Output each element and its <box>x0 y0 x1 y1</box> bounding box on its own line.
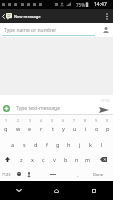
button[interactable]: Add attachment <box>0 95 13 114</box>
staticText: Type name or number <box>4 27 57 34</box>
button[interactable]: j <box>74 137 85 152</box>
button[interactable]: m <box>82 152 93 167</box>
staticText: e <box>28 125 32 132</box>
button[interactable]: Send <box>98 95 113 114</box>
staticText: x <box>31 156 34 163</box>
button[interactable]: 9 <box>91 115 102 137</box>
button[interactable]: ?123 <box>0 167 13 181</box>
button[interactable]: 4 <box>36 115 47 137</box>
button[interactable]: Done <box>84 167 113 181</box>
staticText: g <box>56 141 60 148</box>
button[interactable]: c <box>38 152 49 167</box>
button[interactable]: 3 <box>24 115 36 137</box>
button[interactable]: x <box>27 152 38 167</box>
staticText: r <box>40 125 43 132</box>
button[interactable]: g <box>52 137 63 152</box>
staticText: l <box>101 141 103 148</box>
staticText: o <box>95 125 99 132</box>
button[interactable]: s <box>19 137 30 152</box>
button[interactable]: 5 <box>47 115 58 137</box>
staticText: k <box>89 141 92 148</box>
staticText: n <box>75 156 79 163</box>
staticText: y <box>62 125 65 132</box>
button[interactable]: z <box>15 152 27 167</box>
button[interactable]: 2 <box>12 115 24 137</box>
button[interactable]: v <box>49 152 60 167</box>
staticText: 7 <box>73 118 76 123</box>
staticText: z <box>20 156 23 163</box>
button[interactable]: 6 <box>58 115 69 137</box>
staticText: 2 <box>17 118 20 123</box>
staticText: 5 <box>51 118 54 123</box>
button[interactable]: Add recipient <box>99 23 113 37</box>
button[interactable]: 7 <box>69 115 80 137</box>
staticText: Type text-message <box>16 105 60 112</box>
staticText: q <box>4 125 8 132</box>
button[interactable]: Recent apps <box>75 181 113 200</box>
staticText: b <box>64 156 68 163</box>
button[interactable]: k <box>85 137 96 152</box>
staticText: v <box>53 156 56 163</box>
staticText: h <box>67 141 71 148</box>
button[interactable]: More options <box>101 9 113 23</box>
button[interactable]: Backspace <box>93 152 113 167</box>
staticText: u <box>73 125 77 132</box>
staticText: w <box>16 125 21 132</box>
button[interactable]: Space <box>33 167 72 181</box>
button[interactable]: l <box>96 137 107 152</box>
button[interactable]: Emoji <box>13 167 24 181</box>
staticText: 4 <box>40 118 43 123</box>
button[interactable]: 8 <box>80 115 91 137</box>
button[interactable]: d <box>30 137 41 152</box>
button[interactable]: Navigate up <box>0 9 6 23</box>
button[interactable]: Voice input <box>24 167 33 181</box>
staticText: s <box>23 141 26 148</box>
staticText: 6 <box>62 118 65 123</box>
staticText: a <box>11 141 15 148</box>
staticText: j <box>79 141 81 148</box>
staticText: 0 <box>106 118 109 123</box>
button[interactable]: n <box>71 152 82 167</box>
button[interactable]: 1 <box>0 115 12 137</box>
button[interactable]: . <box>72 167 84 181</box>
staticText: d <box>34 141 38 148</box>
button[interactable]: b <box>60 152 71 167</box>
staticText: i <box>85 125 87 132</box>
staticText: 3 <box>29 118 32 123</box>
button[interactable]: a <box>7 137 19 152</box>
button[interactable]: Back <box>0 181 37 200</box>
button[interactable]: Home <box>37 181 75 200</box>
staticText: 75% <box>76 2 85 8</box>
staticText: c <box>42 156 45 163</box>
staticText: t <box>52 125 54 132</box>
staticText: 8 <box>84 118 87 123</box>
staticText: . <box>77 171 79 178</box>
button[interactable]: f <box>41 137 52 152</box>
staticText: New message <box>14 14 41 19</box>
staticText: 9 <box>95 118 98 123</box>
staticText: p <box>106 125 110 132</box>
staticText: 0/160 <box>101 98 111 103</box>
button[interactable]: h <box>63 137 74 152</box>
staticText: Done <box>93 172 104 177</box>
staticText: f <box>46 141 48 148</box>
staticText: 1 <box>5 118 8 123</box>
button[interactable]: Shift <box>0 152 15 167</box>
staticText: ?123 <box>2 172 11 177</box>
staticText: 14:47 <box>94 1 107 8</box>
staticText: m <box>85 156 91 163</box>
button[interactable]: 0 <box>102 115 113 137</box>
